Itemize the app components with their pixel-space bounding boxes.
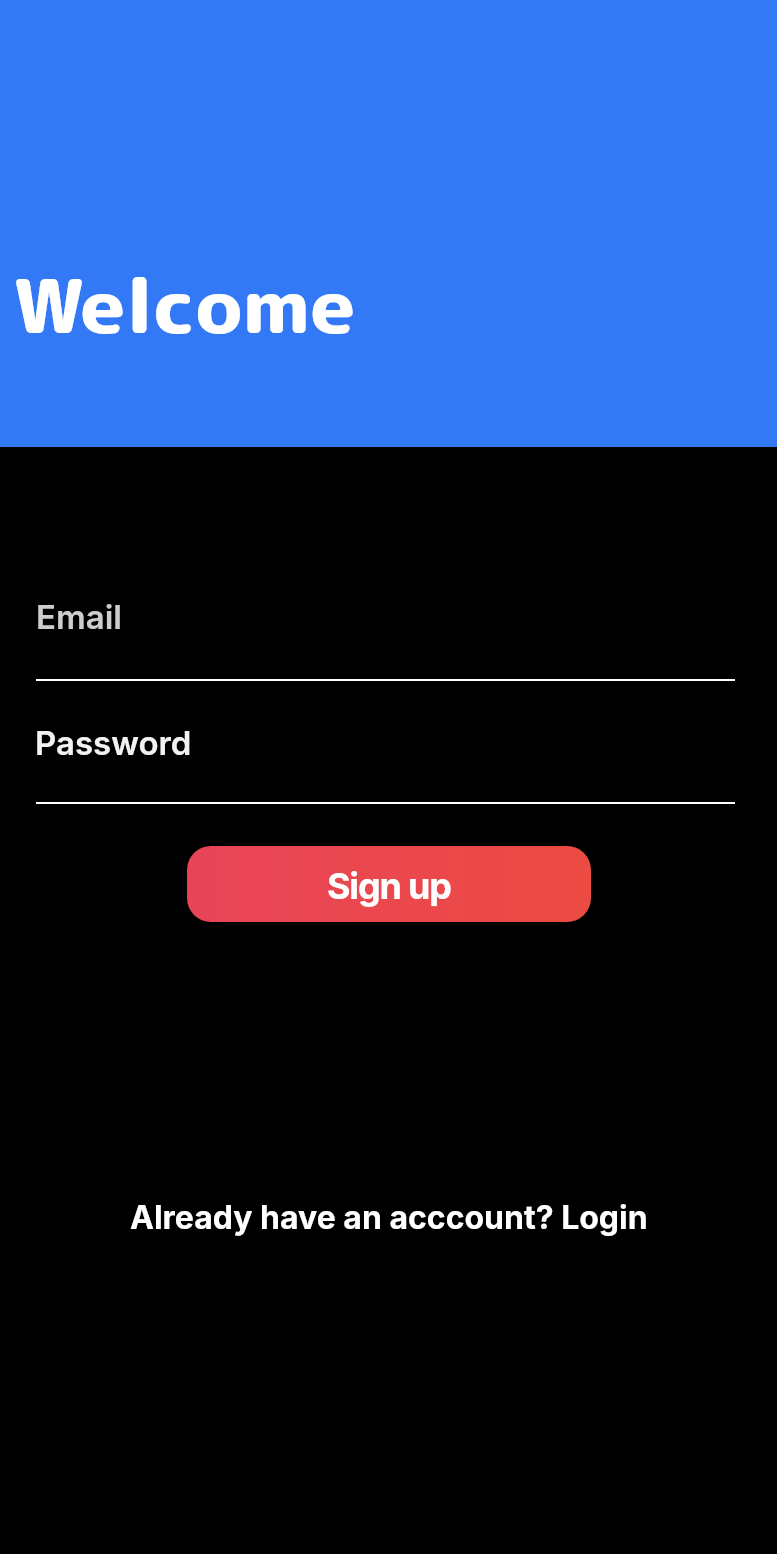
button[interactable]: Sign up (187, 846, 591, 922)
staticText: Password (35, 723, 192, 763)
button[interactable]: Already have an acccount? Login (130, 1198, 648, 1237)
staticText: Welcome (13, 254, 356, 357)
staticText: Email (36, 597, 122, 637)
staticText: Sign up (327, 864, 451, 908)
staticText: Already have an acccount? Login (130, 1198, 648, 1237)
